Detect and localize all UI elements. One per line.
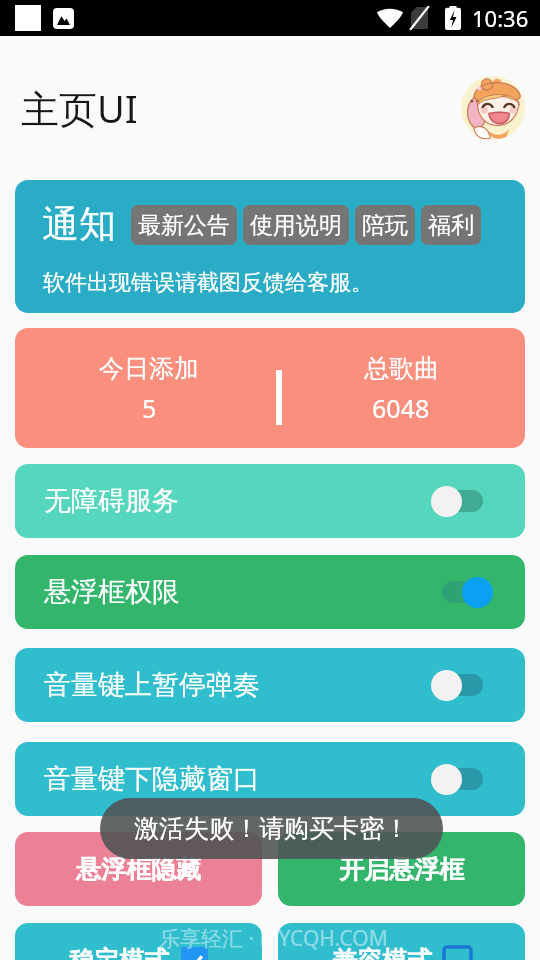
staticText: 通知 (42, 201, 116, 248)
staticText: 陪玩 (362, 211, 408, 240)
staticText: 稳定模式 (69, 945, 169, 960)
staticText: 10:36 (472, 3, 529, 33)
button[interactable]: 最新公告 (131, 205, 237, 245)
staticText: 软件出现错误请截图反馈给客服。 (43, 269, 373, 297)
staticText: 总歌曲 (364, 353, 439, 384)
button[interactable]: 兼容模式 (278, 923, 525, 960)
button[interactable]: Profile (459, 74, 527, 142)
button[interactable]: 开启悬浮框 (278, 832, 525, 906)
staticText: 今日添加 (99, 353, 199, 384)
staticText: 乐享轻汇 · MYCQH.COM (159, 924, 388, 953)
staticText: 6048 (372, 391, 430, 425)
staticText: 音量键下隐藏窗口 (44, 762, 260, 796)
button[interactable]: 陪玩 (355, 205, 415, 245)
staticText: 福利 (428, 211, 474, 240)
staticText: 悬浮框权限 (44, 575, 179, 609)
staticText: 最新公告 (138, 211, 230, 240)
staticText: 5 (142, 391, 157, 425)
button[interactable]: 音量键下隐藏窗口 (15, 742, 525, 816)
button[interactable]: 使用说明 (243, 205, 349, 245)
button[interactable]: 无障碍服务 (15, 464, 525, 538)
button[interactable]: 福利 (421, 205, 481, 245)
button[interactable]: 音量键上暂停弹奏 (15, 648, 525, 722)
staticText: 主页UI (21, 82, 138, 134)
button[interactable]: 悬浮框隐藏 (15, 832, 262, 906)
staticText: 音量键上暂停弹奏 (44, 668, 260, 702)
staticText: 兼容模式 (332, 945, 432, 960)
staticText: 使用说明 (250, 211, 342, 240)
staticText: 激活失败！请购买卡密！ (134, 813, 409, 844)
staticText: 无障碍服务 (44, 484, 179, 518)
staticText: 悬浮框隐藏 (76, 854, 201, 885)
staticText: 开启悬浮框 (339, 854, 464, 885)
button[interactable]: 稳定模式 (15, 923, 262, 960)
button[interactable]: 通知 (15, 180, 525, 313)
button[interactable]: 悬浮框权限 (15, 555, 525, 629)
